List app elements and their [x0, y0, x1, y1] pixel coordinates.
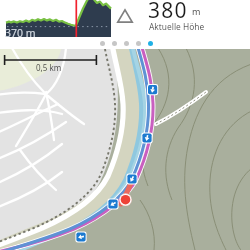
staticText: 380 [148, 0, 188, 25]
button[interactable]: Elevation profile [6, 0, 111, 37]
staticText: m [192, 5, 201, 17]
staticText: 370 m [5, 26, 36, 40]
staticText: Aktuelle Höhe [149, 21, 205, 32]
button[interactable]: Altitude [117, 8, 133, 24]
staticText: 0,5 km [36, 62, 62, 73]
